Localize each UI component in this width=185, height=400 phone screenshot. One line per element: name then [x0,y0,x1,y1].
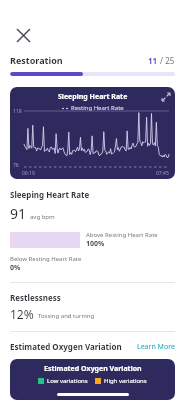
staticText: High variations [104,377,147,385]
button[interactable]: Estimated Oxygen Variation [10,359,175,400]
staticText: 07:45 [156,170,169,177]
staticText: 91 [10,204,27,223]
staticText: 0% [10,263,21,273]
staticText: Below Resting Heart Rate [10,255,82,263]
staticText: 00:19 [22,170,35,177]
staticText: Estimated Oxygen Variation [10,341,122,352]
staticText: Tossing and turning [38,312,95,320]
button[interactable]: Learn More [137,342,175,352]
staticText: 76 [13,162,19,169]
staticText: Resting Heart Rate [71,104,124,112]
staticText: Restoration [10,54,63,66]
staticText: / 25 [158,55,175,66]
staticText: Sleeping Heart Rate [10,189,90,200]
button[interactable]: Close [6,18,40,52]
staticText: Restlessness [10,292,61,303]
button[interactable]: Sleeping Heart Rate [10,87,175,179]
staticText: 12% [10,306,34,322]
staticText: 100% [86,239,105,249]
staticText: 118 [13,108,22,115]
staticText: Estimated Oxygen Variation [44,364,142,374]
staticText: 11 [148,55,158,66]
button[interactable]: Expand chart [159,90,172,103]
staticText: avg bpm [30,213,55,221]
staticText: Sleeping Heart Rate [58,92,128,102]
staticText: Learn More [137,342,175,352]
staticText: Above Resting Heart Rate [86,231,158,239]
staticText: Low variations [47,377,88,385]
